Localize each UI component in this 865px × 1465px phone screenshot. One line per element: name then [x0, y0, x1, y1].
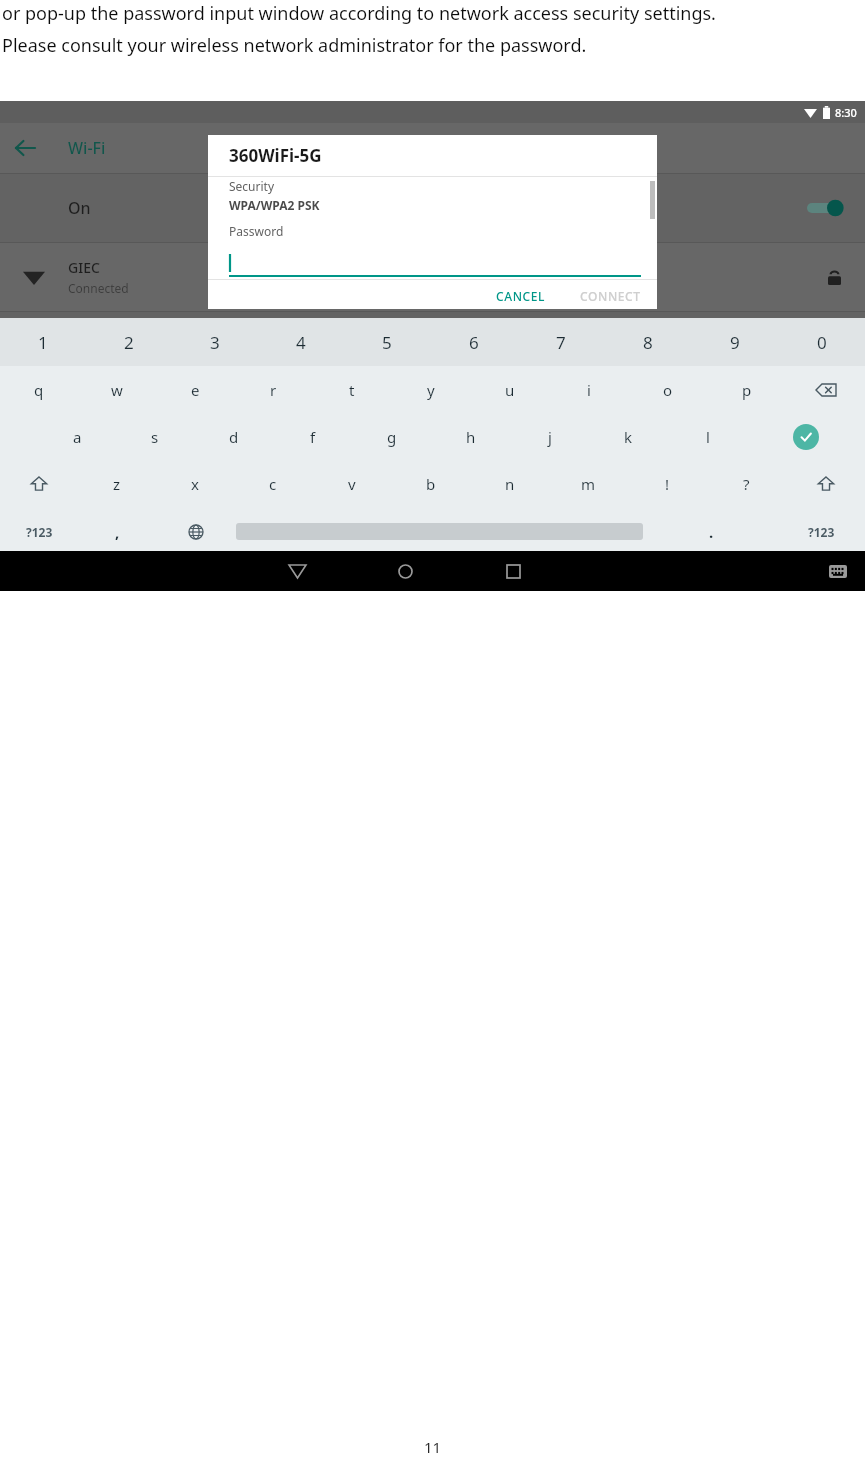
button[interactable]: 3 [172, 318, 258, 366]
staticText: 1 [38, 331, 48, 354]
button[interactable]: . [644, 512, 778, 551]
staticText: 6 [469, 331, 479, 354]
staticText: 3 [210, 331, 220, 354]
button[interactable]: h [431, 413, 510, 460]
button[interactable]: Shift [786, 460, 865, 507]
staticText: ?123 [26, 524, 53, 540]
button[interactable]: Space [235, 512, 644, 551]
button[interactable]: Back [243, 551, 351, 591]
staticText: v [348, 474, 356, 494]
button[interactable]: 1 [0, 318, 86, 366]
button[interactable]: 2 [86, 318, 172, 366]
button[interactable]: CONNECT [570, 280, 657, 309]
staticText: t [349, 380, 355, 400]
staticText: Wi-Fi [68, 137, 106, 159]
button[interactable]: On [0, 174, 865, 242]
button[interactable]: Enter [747, 413, 865, 460]
staticText: f [310, 427, 316, 447]
button[interactable]: b [391, 460, 470, 507]
button[interactable]: Change language [156, 512, 235, 551]
staticText: q [34, 380, 44, 400]
staticText: o [663, 380, 673, 400]
button[interactable] [229, 253, 641, 279]
button[interactable]: u [470, 366, 549, 413]
staticText: Security [229, 178, 275, 194]
button[interactable]: , [78, 512, 156, 551]
staticText: d [229, 427, 239, 447]
button[interactable]: ! [628, 460, 707, 507]
button[interactable]: r [234, 366, 312, 413]
button[interactable]: 4 [258, 318, 344, 366]
staticText: 9 [730, 331, 740, 354]
button[interactable]: w [78, 366, 156, 413]
button[interactable]: i [549, 366, 628, 413]
button[interactable]: 9 [691, 318, 778, 366]
button[interactable]: t [312, 366, 391, 413]
staticText: 11 [424, 1437, 442, 1457]
staticText: ?123 [808, 524, 835, 540]
staticText: e [191, 380, 200, 400]
staticText: , [115, 522, 120, 542]
staticText: 4 [296, 331, 306, 354]
staticText: On [68, 197, 91, 219]
staticText: r [270, 380, 277, 400]
button[interactable]: m [549, 460, 628, 507]
staticText: c [269, 474, 277, 494]
button[interactable]: 6 [430, 318, 517, 366]
button[interactable]: f [273, 413, 352, 460]
staticText: Password [229, 223, 284, 239]
button[interactable]: Shift [0, 460, 78, 507]
button[interactable]: Recent apps [459, 551, 567, 591]
button[interactable]: Home [351, 551, 459, 591]
button[interactable]: p [707, 366, 786, 413]
button[interactable]: ? [707, 460, 786, 507]
button[interactable]: q [0, 366, 78, 413]
button[interactable]: 7 [517, 318, 604, 366]
staticText: i [587, 380, 591, 400]
button[interactable]: s [116, 413, 194, 460]
button[interactable]: y [391, 366, 470, 413]
button[interactable]: k [589, 413, 668, 460]
staticText: 2 [124, 331, 134, 354]
button[interactable]: x [156, 460, 234, 507]
button[interactable]: a [38, 413, 116, 460]
button[interactable]: n [470, 460, 549, 507]
button[interactable]: g [352, 413, 431, 460]
staticText: 360WiFi-5G [229, 144, 322, 167]
button[interactable]: z [78, 460, 156, 507]
staticText: ? [743, 474, 750, 494]
button[interactable]: e [156, 366, 234, 413]
button[interactable]: d [194, 413, 273, 460]
button[interactable]: o [628, 366, 707, 413]
staticText: WPA/WPA2 PSK [229, 197, 320, 213]
staticText: 8:30 [835, 105, 857, 120]
staticText: m [581, 474, 596, 494]
staticText: w [111, 380, 123, 400]
staticText: y [427, 380, 435, 400]
staticText: 8 [643, 331, 653, 354]
button[interactable]: v [312, 460, 391, 507]
staticText: . [709, 522, 714, 542]
button[interactable]: CANCEL [486, 280, 556, 309]
button[interactable]: Switch keyboard [810, 551, 865, 591]
staticText: h [466, 427, 476, 447]
staticText: GIEC [68, 258, 100, 277]
button[interactable]: ?123 [778, 512, 865, 551]
staticText: 7 [556, 331, 566, 354]
button[interactable]: 5 [344, 318, 430, 366]
button[interactable]: j [510, 413, 589, 460]
button[interactable]: 0 [778, 318, 865, 366]
button[interactable]: l [668, 413, 747, 460]
button[interactable]: ?123 [0, 512, 78, 551]
button[interactable]: 8 [604, 318, 691, 366]
button[interactable]: GIEC [0, 243, 865, 311]
button[interactable]: c [234, 460, 312, 507]
button[interactable]: Back [0, 123, 50, 173]
staticText: k [624, 427, 633, 447]
staticText: l [706, 427, 710, 447]
staticText: 5 [382, 331, 392, 354]
staticText: CONNECT [580, 288, 641, 301]
staticText: s [151, 427, 159, 447]
button[interactable]: Backspace [786, 366, 865, 413]
staticText: Connected [68, 280, 129, 296]
